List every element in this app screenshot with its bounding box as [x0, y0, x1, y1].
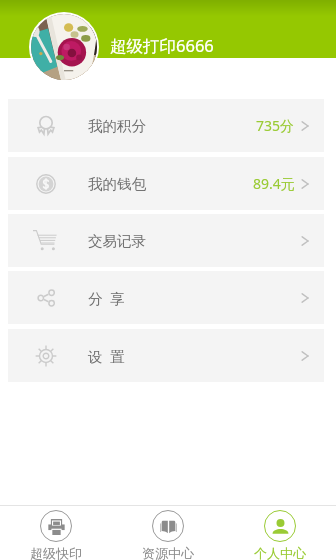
- button[interactable]: My wallet: [8, 157, 324, 210]
- button[interactable]: Transaction records: [8, 214, 324, 267]
- button[interactable]: 超级快印: [0, 506, 112, 560]
- staticText: 分 享: [88, 288, 125, 308]
- button[interactable]: Settings: [8, 329, 324, 382]
- staticText: 个人中心: [254, 545, 306, 560]
- staticText: 超级快印: [30, 545, 82, 560]
- staticText: 超级打印6666: [110, 34, 214, 57]
- staticText: 资源中心: [142, 545, 194, 560]
- staticText: 我的积分: [88, 117, 146, 135]
- button[interactable]: Share: [8, 271, 324, 324]
- staticText: 设 置: [88, 346, 125, 366]
- staticText: 89.4元: [253, 174, 295, 193]
- staticText: 交易记录: [88, 232, 146, 250]
- button[interactable]: My points: [8, 99, 324, 152]
- button[interactable]: 资源中心: [112, 506, 224, 560]
- staticText: 我的钱包: [88, 175, 146, 193]
- staticText: 735分: [256, 116, 295, 135]
- button[interactable]: Profile photo: [29, 12, 99, 82]
- button[interactable]: 个人中心: [224, 506, 336, 560]
